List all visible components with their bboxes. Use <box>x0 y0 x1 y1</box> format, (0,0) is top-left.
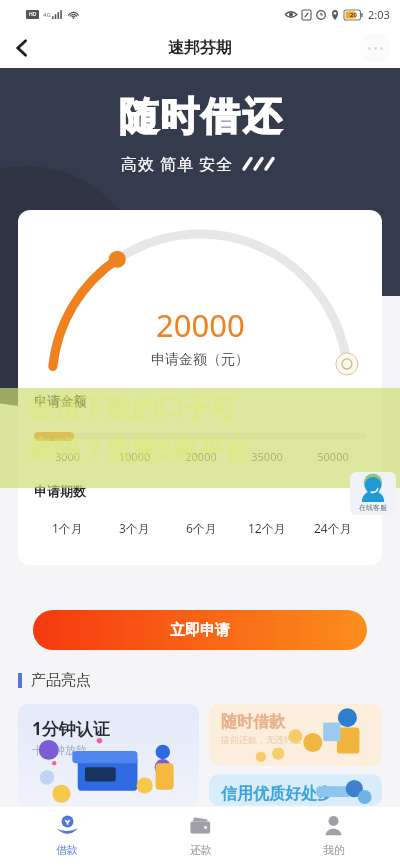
staticText: 24个月 <box>314 520 352 536</box>
button[interactable]: 借款 <box>0 806 134 866</box>
staticText: HD <box>29 11 37 18</box>
staticText: 12个月 <box>248 520 286 536</box>
staticText: 靠吗？实测5家平台 <box>28 431 251 467</box>
staticText: 会员下款的口子可 <box>28 392 236 425</box>
staticText: 申请期数 <box>34 483 86 499</box>
staticText: 立即申请 <box>170 621 230 640</box>
staticText: 还款 <box>190 843 212 857</box>
staticText: 10000 <box>101 449 168 464</box>
staticText: 借款 <box>56 843 78 857</box>
button[interactable]: 立即申请 <box>33 610 367 650</box>
staticText: 35000 <box>234 449 300 464</box>
button[interactable]: 信用优质好处多 <box>209 774 382 806</box>
button[interactable]: 12个月 <box>234 515 300 541</box>
staticText: 6个月 <box>186 520 217 536</box>
button[interactable]: 在线客服 <box>350 472 396 515</box>
staticText: 4G <box>43 11 51 19</box>
staticText: 申请金额（元） <box>151 351 249 369</box>
staticText: 高效 简单 安全 <box>121 153 234 175</box>
button[interactable]: 随时借款 <box>209 704 382 766</box>
staticText: 随时借款 <box>221 712 285 732</box>
staticText: 1个月 <box>52 520 83 536</box>
staticText: 信用优质好处多 <box>221 784 333 804</box>
staticText: 50000 <box>300 449 366 464</box>
button[interactable]: 1个月 <box>34 515 101 541</box>
button[interactable]: 还款 <box>134 806 267 866</box>
staticText: 2:03 <box>368 7 390 22</box>
button[interactable]: 24个月 <box>300 515 366 541</box>
button[interactable]: 3个月 <box>101 515 168 541</box>
staticText: 20 <box>350 11 357 19</box>
staticText: 1分钟认证 <box>32 717 110 740</box>
staticText: 申请金额 <box>34 393 86 409</box>
staticText: 十分钟放款 <box>32 743 87 757</box>
button[interactable] <box>34 431 366 441</box>
staticText: 3个月 <box>119 520 150 536</box>
staticText: 提前还款，无违约金 <box>221 734 302 745</box>
button[interactable]: More options <box>360 33 390 63</box>
staticText: 20000 <box>168 449 234 464</box>
button[interactable]: 6个月 <box>168 515 234 541</box>
staticText: 产品亮点 <box>31 671 91 690</box>
staticText: 20000 <box>156 304 245 346</box>
staticText: 随时借还 <box>118 92 282 141</box>
button[interactable]: 我的 <box>267 806 400 866</box>
staticText: 在线客服 <box>359 503 387 512</box>
staticText: 我的 <box>323 843 345 857</box>
button[interactable]: 1分钟认证 <box>18 704 199 806</box>
staticText: 3000 <box>34 449 101 464</box>
staticText: 速邦芬期 <box>168 38 232 58</box>
button[interactable]: Back <box>0 28 44 68</box>
